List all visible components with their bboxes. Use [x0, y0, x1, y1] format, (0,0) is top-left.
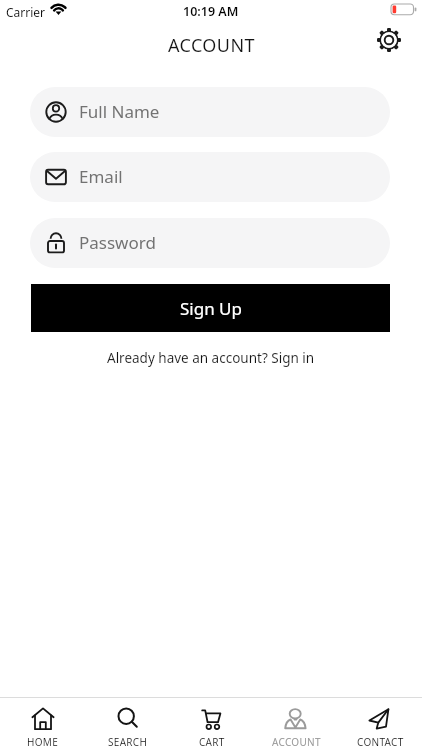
- button[interactable]: [375, 26, 403, 54]
- button[interactable]: Already have an account? Sign in: [107, 349, 315, 367]
- staticText: Carrier: [6, 4, 46, 20]
- button[interactable]: ACCOUNT: [254, 698, 338, 750]
- button[interactable]: Email: [30, 152, 390, 202]
- staticText: ACCOUNT: [168, 33, 255, 58]
- button[interactable]: Full Name: [30, 87, 390, 137]
- staticText: SEARCH: [108, 735, 148, 749]
- button[interactable]: Sign Up: [31, 284, 390, 332]
- staticText: 10:19 AM: [183, 3, 239, 20]
- staticText: CONTACT: [357, 735, 404, 749]
- staticText: Full Name: [79, 100, 160, 123]
- staticText: HOME: [27, 735, 59, 749]
- staticText: Password: [79, 231, 156, 254]
- button[interactable]: CART: [170, 698, 254, 750]
- staticText: ACCOUNT: [272, 735, 321, 749]
- staticText: Email: [79, 165, 123, 188]
- staticText: Already have an account? Sign in: [107, 349, 315, 367]
- staticText: CART: [199, 735, 225, 749]
- button[interactable]: CONTACT: [338, 698, 422, 750]
- button[interactable]: HOME: [0, 698, 85, 750]
- button[interactable]: SEARCH: [85, 698, 170, 750]
- staticText: Sign Up: [180, 297, 242, 320]
- button[interactable]: Password: [30, 218, 390, 268]
